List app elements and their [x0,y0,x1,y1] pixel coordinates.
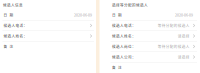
staticText: 2020-06-09 [175,12,193,18]
staticText: 备 注 [112,65,122,70]
staticText: 等待分配的候选人 [158,44,190,49]
staticText: 日 期 [112,12,122,18]
staticText: 请选择 [178,54,190,60]
staticText: 候选人公司： [112,54,136,60]
staticText: 候选人电话： [3,23,27,28]
staticText: 日 期 [3,12,13,18]
staticText: 选择等分配的候选人 [112,2,148,8]
staticText: 候选人姓名： [3,33,27,39]
button[interactable]: 候选人电话： [0,20,96,30]
button[interactable]: 备 注 [0,41,96,51]
button[interactable]: 候选人公司： [99,52,200,62]
staticText: 备 注 [3,44,13,49]
staticText: 候选人姓名： [112,33,136,39]
button[interactable]: 备 注 [99,62,200,72]
button[interactable]: 候选人电话： [99,20,200,30]
button[interactable]: 日 期 [0,10,96,20]
button[interactable]: 候选人姓名： [99,31,200,41]
staticText: 候选人岗位： [112,44,136,49]
staticText: 候选人信息 [3,2,23,8]
staticText: 候选人电话： [112,23,136,28]
button[interactable]: 候选人姓名： [0,31,96,41]
button[interactable]: 候选人岗位： [99,41,200,51]
staticText: 请选择 [178,33,190,39]
staticText: 2020-06-09 [74,12,92,18]
button[interactable]: 日 期 [99,10,200,20]
staticText: 等待分配的候选人 [158,23,190,28]
